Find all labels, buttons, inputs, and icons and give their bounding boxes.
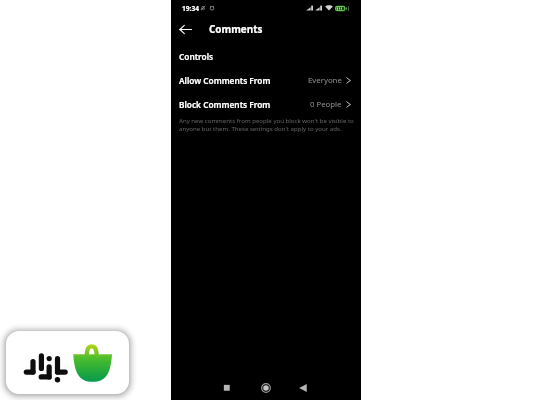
button[interactable]: Bazaar: [6, 331, 129, 394]
staticText: 19:34: [182, 4, 199, 13]
button[interactable]: Allow Comments From: [171, 69, 361, 91]
button[interactable]: Block Comments From: [171, 93, 361, 115]
button[interactable]: Back: [296, 381, 310, 395]
staticText: Controls: [179, 51, 214, 62]
staticText: Block Comments From: [179, 99, 271, 110]
button[interactable]: Home: [259, 381, 273, 395]
staticText: Comments: [209, 22, 263, 35]
staticText: Everyone: [308, 75, 342, 86]
button[interactable]: Recents: [220, 381, 234, 395]
button[interactable]: Back: [178, 22, 193, 37]
staticText: 0 People: [310, 99, 342, 110]
staticText: Any new comments from people you block w…: [179, 116, 354, 132]
staticText: Allow Comments From: [179, 75, 271, 86]
